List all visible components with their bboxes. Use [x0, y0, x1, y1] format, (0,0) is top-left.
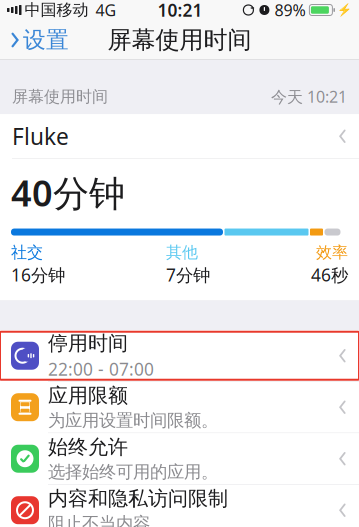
staticText: 内容和隐私访问限制 [48, 486, 228, 511]
button[interactable]: 应用限额 [0, 382, 359, 433]
staticText: 停用时间 [48, 331, 128, 355]
button[interactable]: 设置 [2, 20, 77, 60]
staticText: 中国移动 [24, 0, 88, 20]
staticText: 选择始终可用的应用。 [48, 461, 218, 483]
staticText: 46秒 [311, 263, 348, 286]
button[interactable]: Fluke [0, 114, 359, 158]
staticText: 其他 [166, 243, 198, 262]
staticText: 为应用设置时间限额。 [48, 410, 218, 431]
staticText: 设置 [23, 26, 69, 54]
staticText: 始终允许 [48, 435, 128, 459]
button[interactable]: 始终允许 [0, 433, 359, 484]
button[interactable]: 停用时间 [0, 330, 359, 381]
button[interactable]: 内容和隐私访问限制 [0, 485, 359, 527]
staticText: Fluke [12, 121, 69, 151]
staticText: 7分钟 [166, 263, 210, 286]
staticText: 89% [274, 0, 305, 21]
staticText: 效率 [316, 243, 348, 262]
staticText: 屏幕使用时间 [107, 25, 251, 55]
staticText: 40分钟 [11, 169, 125, 216]
staticText: 22:00 - 07:00 [48, 357, 154, 380]
staticText: 阻止不当内容。 [48, 513, 167, 527]
staticText: 4G [95, 0, 116, 21]
staticText: ⚡ [337, 3, 352, 17]
staticText: 应用限额 [48, 383, 128, 408]
staticText: 今天 10:21 [271, 86, 347, 107]
staticText: 10:21 [157, 0, 202, 21]
staticText: 屏幕使用时间 [12, 87, 108, 106]
staticText: 16分钟 [11, 263, 65, 286]
staticText: 社交 [11, 243, 43, 262]
